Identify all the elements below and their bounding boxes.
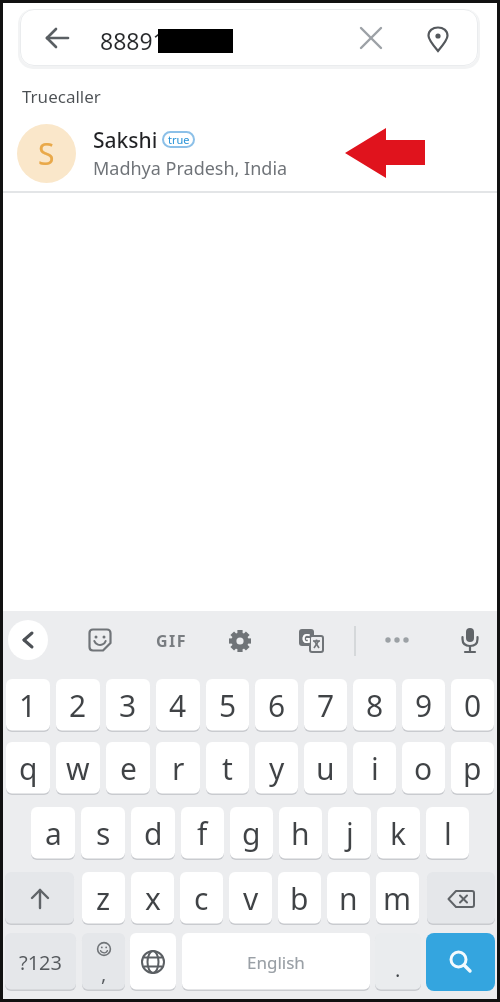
button[interactable] xyxy=(427,872,495,925)
button[interactable] xyxy=(426,933,495,991)
button[interactable]: 3 xyxy=(106,679,150,732)
button[interactable] xyxy=(130,933,176,991)
staticText: f xyxy=(197,813,208,854)
staticText: Madhya Pradesh, India xyxy=(93,156,288,181)
staticText: z xyxy=(96,878,111,919)
staticText: y xyxy=(269,748,285,789)
staticText: true xyxy=(168,132,190,147)
staticText: g xyxy=(242,813,261,854)
staticText: n xyxy=(339,878,358,919)
staticText: p xyxy=(463,748,482,789)
staticText: 88891 xyxy=(100,25,166,56)
button[interactable]: y xyxy=(255,742,298,795)
button[interactable]: b xyxy=(278,872,321,925)
button[interactable]: 2 xyxy=(56,679,100,732)
button[interactable]: w xyxy=(56,742,100,795)
button[interactable]: k xyxy=(377,807,420,860)
staticText: 4 xyxy=(169,685,187,726)
staticText: 6 xyxy=(268,685,286,726)
staticText: w xyxy=(66,748,90,789)
staticText: 0 xyxy=(464,685,482,726)
staticText: ?123 xyxy=(19,949,62,976)
staticText: , xyxy=(101,960,107,987)
staticText: o xyxy=(414,748,433,789)
staticText: x xyxy=(145,878,161,919)
button[interactable] xyxy=(8,620,48,660)
button[interactable]: 0 xyxy=(451,679,494,732)
button[interactable]: l xyxy=(426,807,469,860)
button[interactable] xyxy=(299,629,325,655)
staticText: b xyxy=(290,878,309,919)
button[interactable]: t xyxy=(206,742,249,795)
button[interactable] xyxy=(5,872,74,925)
button[interactable]: 7 xyxy=(304,679,347,732)
staticText: a xyxy=(45,813,62,854)
button[interactable]: GIF xyxy=(156,630,188,652)
button[interactable]: English xyxy=(182,933,370,991)
button[interactable]: s xyxy=(81,807,125,860)
button[interactable]: o xyxy=(402,742,445,795)
button[interactable]: p xyxy=(451,742,494,795)
staticText: k xyxy=(390,813,407,854)
button[interactable]: f xyxy=(181,807,224,860)
button[interactable] xyxy=(228,629,252,653)
button[interactable] xyxy=(3,121,497,185)
staticText: c xyxy=(194,878,209,919)
button[interactable]: 5 xyxy=(206,679,249,732)
button[interactable]: 88891 xyxy=(20,9,478,66)
staticText: Sakshi xyxy=(93,126,158,155)
staticText: Truecaller xyxy=(22,85,101,108)
button[interactable]: , xyxy=(82,933,125,991)
staticText: 5 xyxy=(219,685,237,726)
staticText: t xyxy=(222,748,233,789)
button[interactable] xyxy=(425,27,451,53)
button[interactable]: c xyxy=(180,872,223,925)
staticText: d xyxy=(144,813,163,854)
staticText: 3 xyxy=(119,685,137,726)
staticText: q xyxy=(19,748,38,789)
button[interactable]: d xyxy=(131,807,175,860)
button[interactable]: 4 xyxy=(156,679,200,732)
button[interactable]: m xyxy=(376,872,419,925)
button[interactable]: g xyxy=(230,807,273,860)
staticText: m xyxy=(383,878,412,919)
staticText: 1 xyxy=(19,685,37,726)
staticText: r xyxy=(172,748,185,789)
button[interactable] xyxy=(360,27,382,49)
button[interactable]: n xyxy=(327,872,370,925)
staticText: 9 xyxy=(415,685,433,726)
button[interactable]: e xyxy=(106,742,150,795)
button[interactable]: 9 xyxy=(402,679,445,732)
staticText: . xyxy=(395,956,401,983)
button[interactable]: u xyxy=(304,742,347,795)
button[interactable] xyxy=(384,627,410,653)
button[interactable]: h xyxy=(279,807,322,860)
button[interactable]: 6 xyxy=(255,679,298,732)
staticText: i xyxy=(371,748,379,789)
staticText: S xyxy=(38,133,55,174)
staticText: 2 xyxy=(69,685,87,726)
button[interactable]: j xyxy=(328,807,371,860)
button[interactable]: v xyxy=(229,872,272,925)
button[interactable]: x xyxy=(131,872,174,925)
button[interactable] xyxy=(88,628,112,652)
button[interactable]: 1 xyxy=(6,679,50,732)
staticText: 8 xyxy=(366,685,384,726)
button[interactable]: r xyxy=(156,742,200,795)
staticText: v xyxy=(243,878,259,919)
button[interactable]: q xyxy=(6,742,50,795)
button[interactable] xyxy=(44,25,70,51)
button[interactable]: a xyxy=(31,807,75,860)
staticText: English xyxy=(247,951,305,974)
button[interactable]: . xyxy=(375,933,421,991)
staticText: l xyxy=(444,813,452,854)
staticText: e xyxy=(120,748,137,789)
button[interactable]: 8 xyxy=(353,679,396,732)
staticText: j xyxy=(346,813,354,854)
button[interactable]: ?123 xyxy=(5,933,76,991)
button[interactable] xyxy=(458,627,482,657)
button[interactable]: z xyxy=(82,872,125,925)
staticText: s xyxy=(96,813,111,854)
staticText: 7 xyxy=(317,685,335,726)
button[interactable]: i xyxy=(353,742,396,795)
